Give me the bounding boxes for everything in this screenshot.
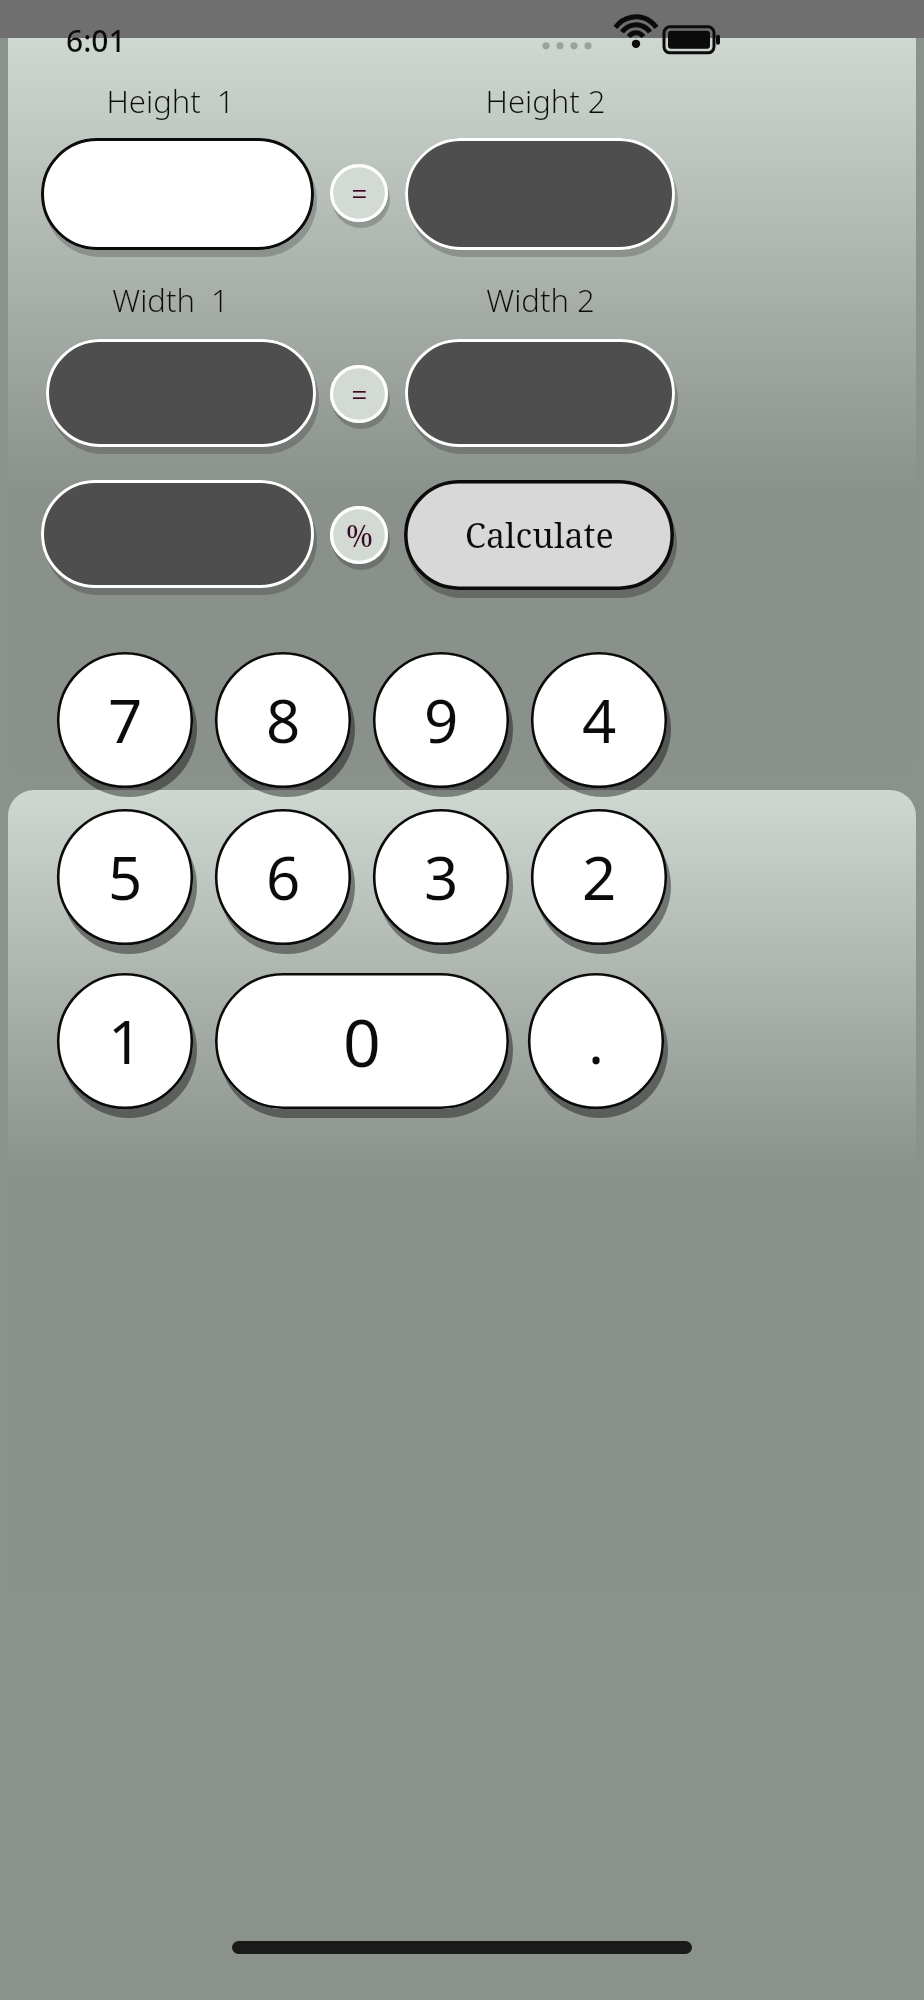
- staticText: 6:01: [66, 20, 126, 61]
- staticText: 0: [343, 996, 381, 1086]
- button[interactable]: [41, 138, 314, 250]
- staticText: 3: [424, 836, 459, 918]
- button[interactable]: 3: [373, 809, 509, 945]
- button[interactable]: 9: [373, 652, 509, 788]
- button[interactable]: .: [528, 973, 664, 1109]
- staticText: 7: [108, 679, 143, 761]
- staticText: 1: [108, 1000, 143, 1082]
- staticText: 8: [266, 679, 301, 761]
- staticText: =: [351, 173, 368, 214]
- button[interactable]: 1: [57, 973, 193, 1109]
- staticText: %: [346, 515, 373, 556]
- button[interactable]: Calculate: [404, 480, 674, 590]
- staticText: 9: [424, 679, 459, 761]
- staticText: Calculate: [465, 512, 614, 558]
- staticText: Width 1: [112, 279, 229, 321]
- staticText: Height 1: [106, 80, 235, 122]
- other: Status icons: [540, 26, 700, 58]
- button[interactable]: Percent: [330, 506, 388, 564]
- staticText: Height 2: [485, 80, 606, 122]
- button[interactable]: 8: [215, 652, 351, 788]
- button[interactable]: [41, 480, 314, 588]
- button[interactable]: [405, 339, 675, 447]
- button[interactable]: Equals: [330, 164, 388, 222]
- staticText: 2: [582, 836, 617, 918]
- staticText: Width 2: [486, 279, 595, 321]
- button[interactable]: 6: [215, 809, 351, 945]
- staticText: 4: [582, 679, 617, 761]
- staticText: 5: [108, 836, 143, 918]
- button[interactable]: 4: [531, 652, 667, 788]
- button[interactable]: 0: [215, 973, 509, 1109]
- staticText: 6: [266, 836, 301, 918]
- button[interactable]: 7: [57, 652, 193, 788]
- button[interactable]: [405, 138, 675, 250]
- staticText: .: [588, 1000, 605, 1082]
- staticText: =: [351, 374, 368, 415]
- button[interactable]: 5: [57, 809, 193, 945]
- button[interactable]: Equals: [330, 365, 388, 423]
- button[interactable]: 2: [531, 809, 667, 945]
- button[interactable]: [46, 339, 316, 447]
